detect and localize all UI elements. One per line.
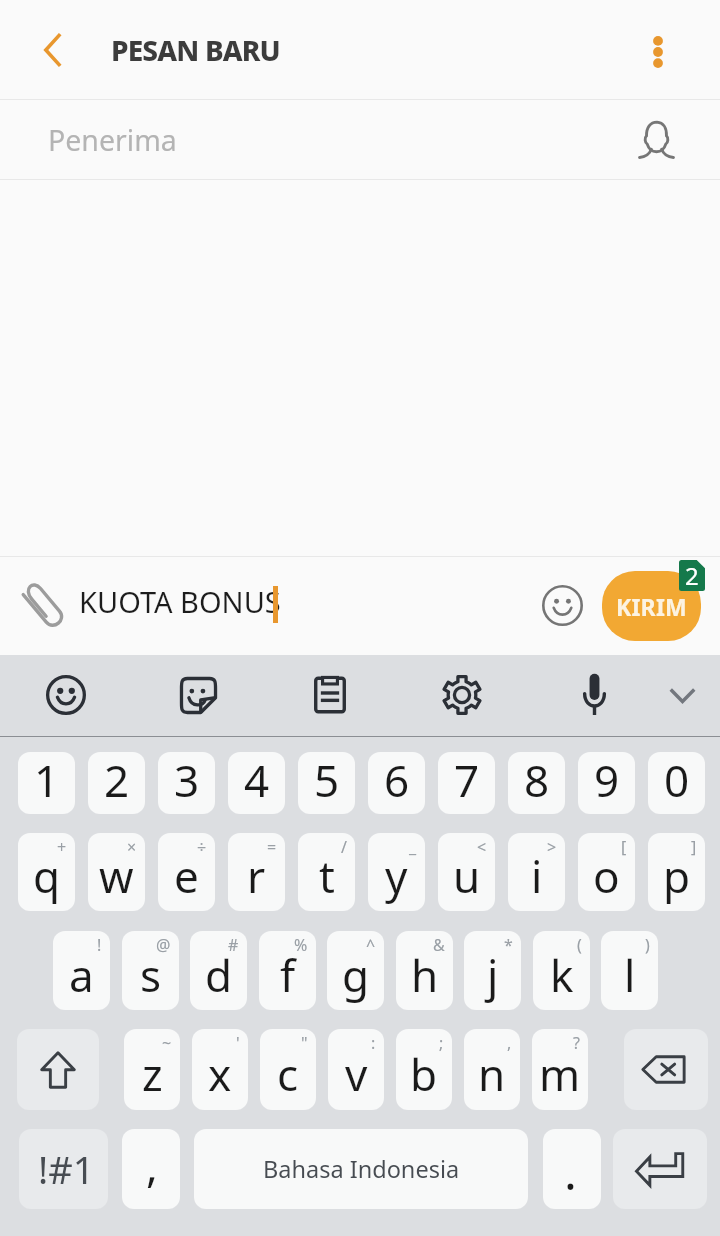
button[interactable]: 7 [438,752,495,814]
staticText: Bahasa Indonesia [263,1153,460,1185]
button[interactable]: , [122,1129,180,1209]
button[interactable]: v [328,1029,384,1110]
button[interactable]: a [53,931,110,1010]
staticText: . [564,1139,577,1204]
button[interactable]: More options [618,12,698,92]
staticText: < [477,836,487,858]
staticText: ' [236,1032,240,1054]
staticText: KUOTA BONUS [79,582,281,621]
button[interactable]: Penerima [0,100,720,180]
button[interactable]: c [260,1029,316,1110]
staticText: h [411,945,439,1005]
button[interactable]: q [18,833,75,911]
staticText: g [342,945,370,1005]
staticText: % [294,934,308,956]
staticText: 2 [104,752,130,810]
button[interactable]: z [124,1029,180,1110]
button[interactable]: w [88,833,145,911]
button[interactable]: Enter [613,1129,707,1209]
button[interactable]: l [601,931,658,1010]
staticText: ) [645,934,650,956]
staticText: s [140,945,162,1005]
button[interactable]: o [578,833,635,911]
staticText: 8 [524,752,550,810]
staticText: , [507,1032,512,1054]
staticText: t [319,846,335,906]
button[interactable]: n [464,1029,520,1110]
button[interactable]: Back [13,10,93,90]
staticText: ( [577,934,582,956]
button[interactable]: 4 [228,752,285,814]
button[interactable]: Stickers [158,655,238,735]
staticText: ; [439,1032,444,1054]
button[interactable]: KIRIM [602,571,701,641]
button[interactable]: d [190,931,247,1010]
button[interactable]: 5 [298,752,355,814]
button[interactable]: j [464,931,521,1010]
button[interactable]: s [122,931,179,1010]
button[interactable]: Voice input [554,654,634,734]
button[interactable]: 0 [648,752,705,814]
button[interactable]: 1 [18,752,75,814]
button[interactable]: u [438,833,495,911]
staticText: e [174,846,199,906]
staticText: y [385,846,408,906]
staticText: [ [621,836,627,858]
button[interactable]: 9 [578,752,635,814]
staticText: 0 [664,752,690,810]
button[interactable]: h [396,931,453,1010]
staticText: j [487,945,499,1005]
button[interactable]: Add recipient [624,107,688,171]
staticText: z [142,1044,163,1104]
staticText: 9 [594,752,620,810]
button[interactable]: Bahasa Indonesia [194,1129,528,1209]
staticText: _ [409,836,417,858]
button[interactable]: Settings [422,655,502,735]
button[interactable]: t [298,833,355,911]
button[interactable]: 3 [158,752,215,814]
button[interactable]: 8 [508,752,565,814]
staticText: × [127,836,137,858]
button[interactable]: Hide keyboard [642,655,720,735]
button[interactable]: r [228,833,285,911]
button[interactable]: 2 [88,752,145,814]
staticText: c [277,1044,299,1104]
button[interactable]: k [533,931,590,1010]
button[interactable]: . [543,1129,601,1209]
button[interactable]: Emoji [26,655,106,735]
button[interactable]: Shift [17,1029,99,1110]
button[interactable]: b [396,1029,452,1110]
button[interactable]: g [327,931,384,1010]
staticText: ÷ [197,836,207,858]
button[interactable]: f [259,931,316,1010]
button[interactable]: m [532,1029,588,1110]
staticText: 4 [244,752,270,810]
button[interactable]: x [192,1029,248,1110]
staticText: ^ [366,934,376,956]
button[interactable]: Clipboard [290,655,370,735]
staticText: Penerima [48,121,177,160]
staticText: , [146,1135,158,1195]
staticText: u [453,846,481,906]
button[interactable]: p [648,833,705,911]
button[interactable]: !#1 [19,1129,108,1209]
staticText: # [228,934,239,956]
button[interactable]: Attach [12,574,76,638]
staticText: 6 [384,752,410,810]
staticText: n [478,1044,506,1104]
staticText: r [247,846,266,906]
staticText: = [267,836,277,858]
staticText: 5 [314,752,340,810]
staticText: PESAN BARU [111,31,280,69]
button[interactable]: Backspace [624,1029,708,1110]
staticText: v [345,1044,368,1104]
button[interactable]: e [158,833,215,911]
button[interactable]: Emoji [530,573,594,637]
button[interactable]: 6 [368,752,425,814]
button[interactable]: i [508,833,565,911]
staticText: & [433,934,445,956]
staticText: * [504,934,513,956]
button[interactable]: y [368,833,425,911]
staticText: + [57,836,67,858]
staticText: !#1 [38,1143,95,1195]
